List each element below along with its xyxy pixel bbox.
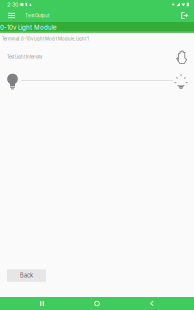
button[interactable]: Test Output <box>20 9 49 22</box>
staticText: Terminal: 0-10v Light Mod`t Module, Ligh… <box>2 36 89 41</box>
staticText: Test Light Intensity <box>7 54 42 59</box>
button[interactable]: Home <box>84 297 110 310</box>
staticText: Test Output <box>25 13 49 18</box>
staticText: 2:30 <box>7 1 18 8</box>
button[interactable]: Back <box>7 269 46 282</box>
staticText: Back <box>20 272 33 279</box>
button[interactable]: Back <box>139 297 165 310</box>
staticText: 0-10v Light Module <box>0 24 57 31</box>
button[interactable]: Sign out <box>178 9 191 22</box>
button[interactable]: Recent apps <box>29 297 55 310</box>
button[interactable]: Menu <box>3 9 20 22</box>
